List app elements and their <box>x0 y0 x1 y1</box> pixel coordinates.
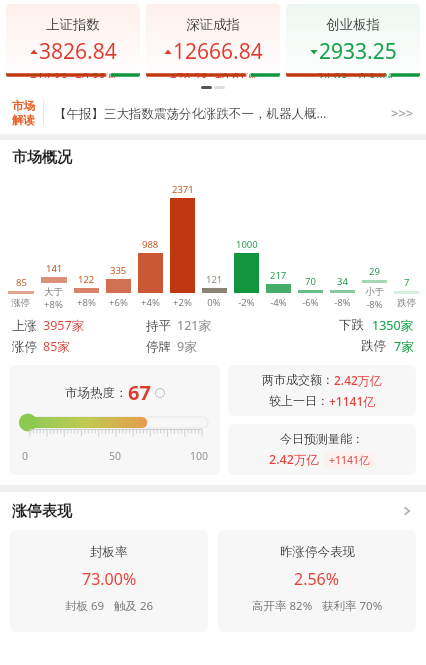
staticText: 高开率 82% <box>252 598 313 614</box>
staticText: -8% <box>334 296 351 309</box>
staticText: +4% <box>141 296 160 309</box>
staticText: 70 <box>305 275 316 288</box>
button[interactable]: 昨涨停今表现 <box>218 530 416 632</box>
staticText: +0.61% <box>215 69 256 78</box>
staticText: 上涨 <box>12 318 37 334</box>
staticText: 100 <box>146 449 208 463</box>
staticText: 7家 <box>394 338 414 355</box>
staticText: 2371 <box>172 183 194 196</box>
staticText: -0.84% <box>355 69 393 78</box>
staticText: -6% <box>302 296 319 309</box>
staticText: +2% <box>173 296 192 309</box>
staticText: -8% <box>366 298 383 309</box>
button[interactable]: 两市成交额： <box>228 365 416 416</box>
staticText: 获利率 70% <box>322 598 383 614</box>
staticText: 85 <box>16 276 27 289</box>
staticText: 上证指数 <box>46 16 100 33</box>
staticText: 封板率 <box>90 544 128 560</box>
staticText: >>> <box>391 104 414 122</box>
staticText: 解读 <box>12 113 35 127</box>
staticText: +14.33 <box>30 69 68 78</box>
staticText: 3957家 <box>43 317 85 334</box>
staticText: -24.93 <box>313 69 348 78</box>
staticText: 0 <box>22 449 84 463</box>
button[interactable]: 涨停表现 <box>0 492 426 530</box>
staticText: 9家 <box>177 338 197 355</box>
staticText: +0.38% <box>75 69 116 78</box>
staticText: 1000 <box>236 238 258 251</box>
staticText: 1350家 <box>372 317 414 334</box>
staticText: 73.00% <box>82 568 137 590</box>
staticText: 2.42万亿 <box>269 451 319 468</box>
staticText: 988 <box>142 238 159 251</box>
staticText: 67 <box>128 379 151 406</box>
staticText: 涨停 <box>12 339 37 355</box>
staticText: 深证成指 <box>186 16 240 33</box>
staticText: 昨涨停今表现 <box>280 544 355 560</box>
staticText: 121 <box>206 273 223 286</box>
staticText: 141 <box>46 262 63 275</box>
staticText: 121家 <box>177 317 211 334</box>
button[interactable]: 今日预测量能： <box>228 424 416 475</box>
staticText: 2.56% <box>294 568 340 590</box>
staticText: +76.28 <box>170 69 208 78</box>
staticText: 大于 <box>44 286 63 298</box>
staticText: 封板 69 <box>65 598 105 614</box>
staticText: +1141亿 <box>329 393 376 409</box>
staticText: 跌停 <box>397 297 416 309</box>
staticText: 7 <box>404 276 410 289</box>
staticText: 市场 <box>12 99 35 113</box>
staticText: 217 <box>270 269 287 282</box>
staticText: +6% <box>109 296 128 309</box>
staticText: 0% <box>207 296 221 309</box>
staticText: +8% <box>77 296 96 309</box>
staticText: 29 <box>369 265 380 278</box>
staticText: 122 <box>78 273 95 286</box>
staticText: 涨停表现 <box>12 502 400 521</box>
staticText: -2% <box>238 296 255 309</box>
staticText: 市场热度： <box>65 385 128 401</box>
staticText: +1141亿 <box>329 453 370 467</box>
button[interactable]: 上证指数 <box>6 4 140 78</box>
staticText: 85家 <box>43 338 70 355</box>
staticText: 50 <box>84 449 146 463</box>
button[interactable]: 封板率 <box>10 530 208 632</box>
button[interactable]: 创业板指 <box>286 4 420 78</box>
button[interactable]: 市场 <box>0 92 426 134</box>
staticText: 较上一日： <box>269 393 329 408</box>
staticText: 【午报】三大指数震荡分化涨跌不一，机器人概… <box>54 105 391 122</box>
staticText: 2.42万亿 <box>334 372 382 388</box>
staticText: 335 <box>110 264 127 277</box>
staticText: +8% <box>44 298 63 309</box>
staticText: 34 <box>337 275 348 288</box>
staticText: 创业板指 <box>326 16 380 33</box>
staticText: 2933.25 <box>319 37 397 66</box>
staticText: 涨停 <box>11 297 30 309</box>
staticText: 跌停 <box>361 338 386 354</box>
staticText: 小于 <box>365 286 384 298</box>
staticText: 3826.84 <box>39 37 117 66</box>
staticText: 触及 26 <box>114 598 154 614</box>
staticText: 持平 <box>146 318 171 334</box>
button[interactable]: 深证成指 <box>146 4 280 78</box>
staticText: 停牌 <box>146 339 171 355</box>
other: 查看涨停表现详情 <box>400 504 414 518</box>
button[interactable]: 市场热度： <box>10 365 220 475</box>
staticText: 市场概况 <box>12 148 72 167</box>
staticText: 两市成交额： <box>262 372 334 387</box>
staticText: -4% <box>270 296 287 309</box>
staticText: 12666.84 <box>173 37 263 66</box>
staticText: 今日预测量能： <box>280 431 364 446</box>
staticText: 下跌 <box>339 317 364 333</box>
